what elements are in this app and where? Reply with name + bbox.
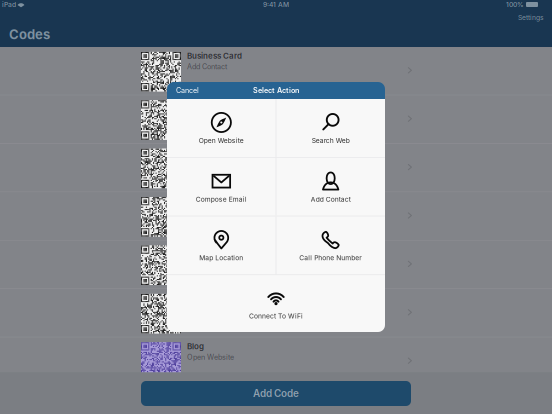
staticText: iPad bbox=[2, 0, 16, 9]
button[interactable]: Cancel bbox=[176, 86, 199, 95]
staticText: Codes bbox=[9, 27, 50, 42]
staticText: Search Web bbox=[312, 136, 350, 145]
staticText: Connect To WiFi bbox=[249, 312, 303, 320]
button[interactable] bbox=[0, 95, 552, 144]
staticText: Business Card bbox=[187, 51, 242, 61]
button[interactable]: Open Website bbox=[167, 99, 276, 157]
staticText: Call Phone Number bbox=[299, 254, 362, 262]
button[interactable]: Add Code bbox=[141, 381, 411, 406]
button[interactable]: Add Contact bbox=[276, 158, 385, 216]
button[interactable]: Connect To WiFi bbox=[167, 275, 385, 332]
staticText: Add Contact bbox=[187, 62, 227, 71]
button[interactable]: Blog bbox=[0, 337, 552, 386]
staticText: Settings bbox=[518, 13, 544, 22]
staticText: 100% bbox=[506, 0, 524, 9]
staticText: Add Code bbox=[253, 387, 299, 399]
button[interactable]: Settings bbox=[518, 13, 544, 22]
button[interactable]: Search Web bbox=[276, 99, 385, 157]
button[interactable] bbox=[0, 241, 552, 289]
staticText: Blog bbox=[187, 341, 204, 351]
button[interactable] bbox=[0, 289, 552, 337]
button[interactable]: Compose Email bbox=[167, 158, 276, 216]
staticText: Add Contact bbox=[311, 195, 351, 203]
staticText: Open Website bbox=[187, 353, 234, 361]
staticText: Open Website bbox=[199, 136, 244, 145]
staticText: Select Action bbox=[253, 86, 299, 95]
button[interactable]: Call Phone Number bbox=[276, 216, 385, 274]
staticText: Cancel bbox=[176, 86, 199, 95]
button[interactable] bbox=[0, 192, 552, 241]
button[interactable]: Business Card bbox=[0, 47, 552, 95]
button[interactable]: Map Location bbox=[167, 216, 276, 274]
staticText: 9:41 AM bbox=[263, 0, 289, 9]
button[interactable] bbox=[0, 144, 552, 192]
staticText: Map Location bbox=[199, 254, 243, 262]
staticText: Compose Email bbox=[196, 195, 247, 203]
